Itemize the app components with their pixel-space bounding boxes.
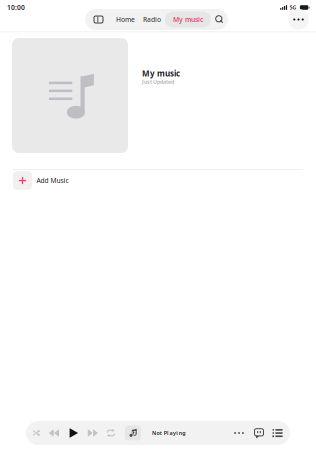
button[interactable]: More options [232,421,246,445]
button[interactable]: Play [67,421,81,445]
button[interactable]: Next [85,421,100,445]
button[interactable]: More [288,9,309,30]
staticText: My music [173,15,203,24]
button[interactable]: Playing Next [270,421,284,445]
button[interactable]: Not Playing [125,421,185,445]
button[interactable]: Show sidebar [85,9,112,30]
staticText: Add Music [36,176,68,185]
button[interactable]: Shuffle [30,421,44,445]
button[interactable]: Home [112,9,139,30]
button[interactable]: My music [165,9,211,30]
staticText: Radio [143,15,161,24]
button[interactable]: Add Music [0,169,316,191]
staticText: 10:00 [7,3,25,12]
staticText: Not Playing [152,429,185,437]
staticText: Just Updated [142,78,174,85]
button[interactable]: Search [211,9,228,30]
staticText: Home [116,15,135,24]
button[interactable]: Previous [46,421,61,445]
staticText: My music [142,68,180,79]
button[interactable]: Lyrics [252,421,266,445]
button[interactable]: Repeat [104,421,118,445]
staticText: 5G [289,4,296,11]
button[interactable]: Radio [139,9,165,30]
